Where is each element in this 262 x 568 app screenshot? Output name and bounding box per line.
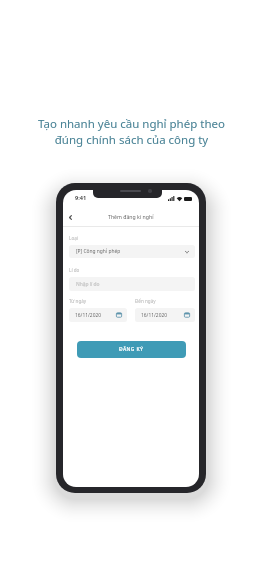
staticText: Loại bbox=[69, 235, 78, 241]
other: Pick date bbox=[116, 312, 122, 318]
button[interactable]: 16/11/2020 bbox=[135, 308, 195, 322]
other: Expand bbox=[185, 251, 189, 253]
staticText: Đến ngày bbox=[135, 298, 156, 304]
staticText: [P] Công nghỉ phép bbox=[76, 248, 121, 255]
staticText: 16/11/2020 bbox=[141, 312, 168, 319]
button[interactable]: 16/11/2020 bbox=[69, 308, 127, 322]
staticText: 16/11/2020 bbox=[75, 312, 102, 319]
staticText: Từ ngày bbox=[69, 298, 87, 304]
other: Pick date bbox=[184, 312, 190, 318]
staticText: Thêm đăng kí nghỉ bbox=[108, 213, 154, 220]
staticText: Tạo nhanh yêu cầu nghỉ phép theo đúng ch… bbox=[38, 116, 225, 147]
button[interactable]: ĐĂNG KÝ bbox=[77, 341, 186, 358]
button[interactable]: Nhập lí do bbox=[69, 277, 195, 291]
staticText: Nhập lí do bbox=[76, 281, 100, 288]
staticText: Lí do bbox=[69, 267, 80, 273]
button[interactable]: Back bbox=[64, 211, 76, 223]
staticText: ĐĂNG KÝ bbox=[119, 346, 144, 353]
staticText: 9:41 bbox=[75, 194, 87, 202]
button[interactable]: [P] Công nghỉ phép bbox=[69, 245, 195, 258]
